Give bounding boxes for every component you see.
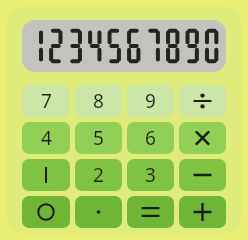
staticText: 2 (93, 162, 104, 188)
staticText: 5 (93, 125, 104, 151)
button[interactable]: 8 (75, 85, 122, 117)
button[interactable]: Equals (127, 196, 174, 228)
button[interactable]: 5 (75, 122, 122, 154)
button[interactable]: 3 (127, 159, 174, 191)
staticText: 3 (145, 162, 156, 188)
button[interactable]: Zero (22, 196, 70, 228)
button[interactable]: Decimal point (75, 196, 122, 228)
staticText: 7 (41, 88, 52, 114)
button[interactable]: Multiply (179, 122, 226, 154)
button[interactable]: Divide (179, 85, 226, 117)
button[interactable]: Add (179, 196, 226, 228)
button[interactable]: 2 (75, 159, 122, 191)
staticText: 8 (93, 88, 104, 114)
staticText: 4 (41, 125, 52, 151)
button[interactable]: 6 (127, 122, 174, 154)
staticText: 6 (145, 125, 156, 151)
button[interactable]: 4 (22, 122, 70, 154)
button[interactable]: 9 (127, 85, 174, 117)
staticText: 9 (145, 88, 156, 114)
button[interactable]: Subtract (179, 159, 226, 191)
button[interactable]: 7 (22, 85, 70, 117)
button[interactable]: One (22, 159, 70, 191)
